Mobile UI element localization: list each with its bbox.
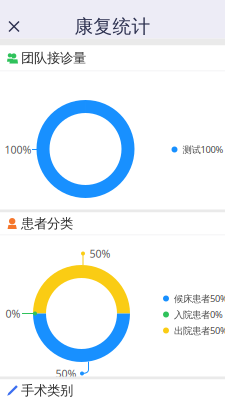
staticText: 50% xyxy=(89,246,110,261)
staticText: 团队接诊量 xyxy=(21,50,86,66)
staticText: 50% xyxy=(55,366,76,381)
staticText: 0% xyxy=(5,306,20,321)
staticText: 入院患者0% xyxy=(174,308,223,321)
staticText: 100% xyxy=(4,142,31,157)
button[interactable]: 患者分类 xyxy=(0,212,225,234)
staticText: 手术类别 xyxy=(21,382,73,399)
staticText: 患者分类 xyxy=(21,215,73,232)
staticText: 候床患者50% xyxy=(174,292,225,305)
button[interactable]: 团队接诊量 xyxy=(0,45,225,70)
button[interactable]: Close xyxy=(0,12,28,40)
staticText: 出院患者50% xyxy=(174,324,225,337)
button[interactable]: 手术类别 xyxy=(0,379,225,400)
staticText: 测试100% xyxy=(182,143,223,156)
staticText: 康复统计 xyxy=(74,15,150,38)
